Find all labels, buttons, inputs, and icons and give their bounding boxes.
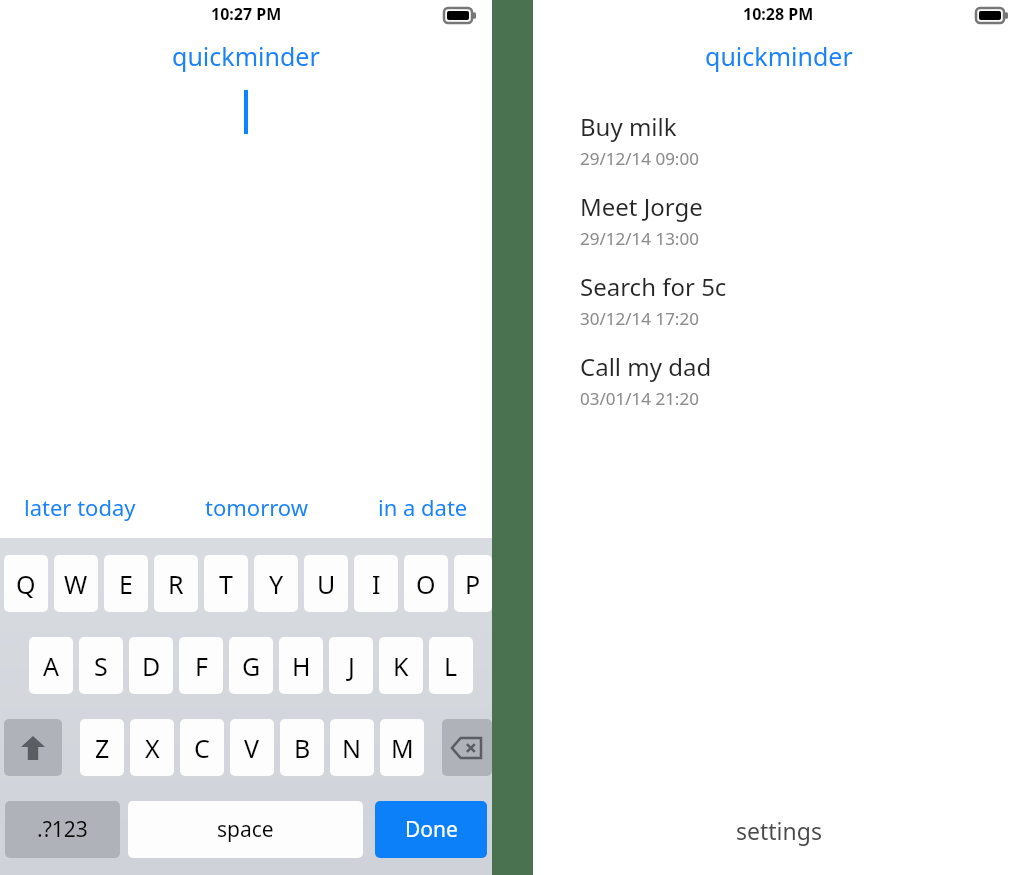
button[interactable]: P <box>454 555 492 612</box>
staticText: A <box>43 649 59 683</box>
staticText: O <box>416 567 436 601</box>
staticText: settings <box>736 815 822 846</box>
button[interactable]: E <box>104 555 148 612</box>
button[interactable]: Q <box>4 555 48 612</box>
button[interactable]: M <box>380 719 424 776</box>
staticText: 10:28 PM <box>743 3 814 25</box>
button[interactable]: .?123 <box>5 801 120 858</box>
button[interactable]: Search for 5c <box>533 270 1024 350</box>
button[interactable]: D <box>129 637 173 694</box>
button[interactable]: space <box>128 801 363 858</box>
button[interactable]: Meet Jorge <box>533 190 1024 270</box>
staticText: quickminder <box>172 39 320 73</box>
button[interactable]: K <box>379 637 423 694</box>
staticText: 03/01/14 21:20 <box>580 387 699 410</box>
staticText: E <box>119 567 133 601</box>
staticText: quickminder <box>705 39 853 73</box>
staticText: Y <box>269 567 284 601</box>
button[interactable]: Buy milk <box>533 110 1024 190</box>
button[interactable]: N <box>330 719 374 776</box>
staticText: L <box>444 649 458 683</box>
staticText: Done <box>405 815 458 844</box>
staticText: G <box>242 649 261 683</box>
staticText: 30/12/14 17:20 <box>580 307 699 330</box>
button[interactable]: Y <box>254 555 298 612</box>
staticText: Meet Jorge <box>580 190 703 223</box>
staticText: space <box>217 815 274 844</box>
button[interactable]: tomorrow <box>201 488 313 526</box>
staticText: B <box>294 731 311 765</box>
staticText: V <box>244 731 260 765</box>
staticText: Z <box>95 731 110 765</box>
staticText: R <box>168 567 184 601</box>
staticText: T <box>219 567 233 601</box>
button[interactable]: Shift <box>4 719 62 776</box>
staticText: tomorrow <box>205 492 309 522</box>
button[interactable]: T <box>204 555 248 612</box>
button[interactable]: X <box>130 719 174 776</box>
staticText: M <box>391 731 414 765</box>
button[interactable]: Z <box>80 719 124 776</box>
staticText: J <box>348 649 355 683</box>
button[interactable]: H <box>279 637 323 694</box>
button[interactable]: O <box>404 555 448 612</box>
staticText: Q <box>16 567 36 601</box>
staticText: U <box>317 567 336 601</box>
staticText: 29/12/14 09:00 <box>580 147 699 170</box>
staticText: later today <box>24 492 136 522</box>
button[interactable]: Call my dad <box>533 350 1024 430</box>
staticText: I <box>372 567 381 601</box>
button[interactable]: L <box>429 637 473 694</box>
button[interactable]: W <box>54 555 98 612</box>
button[interactable]: R <box>154 555 198 612</box>
staticText: K <box>393 649 409 683</box>
button[interactable]: later today <box>20 488 140 526</box>
button[interactable]: I <box>354 555 398 612</box>
staticText: Call my dad <box>580 350 712 383</box>
staticText: D <box>142 649 161 683</box>
button[interactable]: Backspace <box>442 719 492 776</box>
staticText: N <box>342 731 362 765</box>
staticText: Buy milk <box>580 110 677 143</box>
button[interactable]: G <box>229 637 273 694</box>
staticText: Search for 5c <box>580 270 727 303</box>
staticText: 29/12/14 13:00 <box>580 227 699 250</box>
staticText: W <box>64 567 88 601</box>
button[interactable]: S <box>79 637 123 694</box>
staticText: F <box>195 649 208 683</box>
staticText: S <box>94 649 108 683</box>
staticText: .?123 <box>37 815 88 844</box>
button[interactable]: Done <box>375 801 487 858</box>
button[interactable]: F <box>179 637 223 694</box>
button[interactable]: B <box>280 719 324 776</box>
button[interactable]: J <box>329 637 373 694</box>
staticText: P <box>465 567 481 601</box>
staticText: 10:27 PM <box>211 3 282 25</box>
staticText: H <box>292 649 311 683</box>
staticText: X <box>145 731 160 765</box>
button[interactable]: A <box>29 637 73 694</box>
button[interactable]: settings <box>728 807 830 854</box>
staticText: in a date <box>378 492 468 522</box>
staticText: C <box>194 731 210 765</box>
button[interactable]: U <box>304 555 348 612</box>
button[interactable]: V <box>230 719 274 776</box>
button[interactable]: in a date <box>374 488 472 526</box>
button[interactable]: C <box>180 719 224 776</box>
